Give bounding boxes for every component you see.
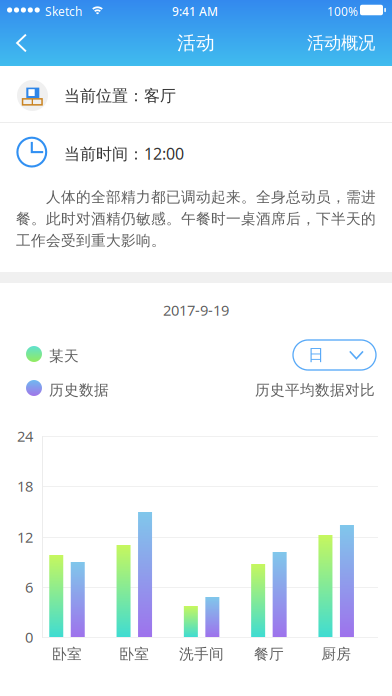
staticText: 餐厅	[254, 645, 284, 663]
staticText: 厨房	[321, 645, 351, 663]
staticText: 活动	[177, 31, 215, 54]
staticText: 2017-9-19	[163, 300, 229, 320]
staticText: 18	[17, 476, 33, 496]
staticText: 12	[17, 527, 33, 547]
staticText: 卧室	[52, 645, 82, 663]
staticText: 0	[25, 627, 33, 647]
staticText: 历史数据	[49, 381, 109, 399]
staticText: 当前位置：客厅	[64, 86, 176, 106]
staticText: 活动概况	[307, 32, 375, 54]
button[interactable]: Back	[0, 20, 41, 66]
staticText: 历史平均数据对比	[255, 381, 375, 399]
staticText: 9:41 AM	[172, 3, 218, 19]
staticText: 日	[308, 345, 324, 365]
button[interactable]: 日	[293, 340, 376, 370]
staticText: 6	[25, 577, 33, 597]
staticText: Sketch	[45, 3, 82, 19]
staticText: 卧室	[119, 645, 149, 663]
staticText: 当前时间：12:00	[64, 143, 184, 164]
staticText: 人体的全部精力都已调动起来。全身总动员，需进餐。此时对酒精仍敏感。午餐时一桌酒席…	[16, 188, 376, 250]
staticText: 100%	[327, 3, 358, 19]
staticText: 24	[17, 426, 33, 446]
staticText: 某天	[49, 347, 79, 365]
button[interactable]: 活动概况	[293, 20, 392, 66]
staticText: 洗手间	[179, 645, 224, 663]
